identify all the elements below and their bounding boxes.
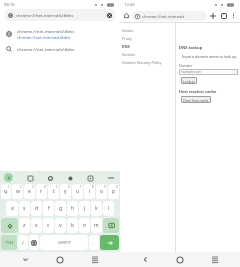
button[interactable]: Home [122,11,131,20]
button[interactable]: More [106,173,116,183]
staticText: QWERTY [58,241,71,245]
button[interactable]: New tab [207,10,218,21]
staticText: 3 [32,185,34,189]
button[interactable]: chrome://net-internals/#dns [4,9,116,21]
button[interactable]: c [43,218,54,233]
button[interactable]: Clear host cache [181,96,211,103]
staticText: m [94,222,99,229]
button[interactable]: Shift [1,218,18,233]
button[interactable]: a [6,201,18,216]
button[interactable]: Expand toolbar [4,173,13,182]
staticText: 9 [104,185,106,189]
button[interactable]: Back [135,252,155,267]
button[interactable]: 9 [96,184,107,199]
staticText: Sockets [122,52,136,57]
button[interactable]: d [31,201,42,216]
staticText: j [84,205,86,212]
staticText: chrome://net-internals/#dns [17,46,75,52]
button[interactable]: n [79,218,90,233]
button[interactable]: chrome://net-internals/#dns [0,42,120,55]
staticText: Input a domain name to look up [182,54,237,59]
staticText: e [28,188,31,195]
staticText: 0 [116,185,118,189]
staticText: . [93,240,95,246]
button[interactable]: Go [100,235,119,250]
staticText: / [22,240,24,246]
button[interactable]: DNS [122,42,175,50]
button[interactable]: QWERTY [40,235,88,250]
button[interactable]: Keyboard tool 4 [86,174,94,182]
button[interactable]: x [31,218,42,233]
staticText: b [71,222,75,229]
staticText: Domain: [179,63,193,68]
button[interactable]: Proxy [122,34,175,42]
button[interactable]: More options [229,11,238,20]
button[interactable]: Tabs [218,10,229,21]
button[interactable]: Hide keyboard [15,252,35,267]
button[interactable]: z [19,218,30,233]
button[interactable]: Lookup [181,77,197,84]
button[interactable]: / [18,235,28,250]
button[interactable]: chrome://net-internals/#dns [0,25,120,42]
button[interactable]: 1 [1,184,11,199]
staticText: 1 [8,185,10,189]
button[interactable]: Domain Security Policy [122,58,175,66]
button[interactable]: h [67,201,78,216]
staticText: f [48,205,50,212]
button[interactable]: g [55,201,66,216]
staticText: u [76,188,80,195]
staticText: example.com [181,70,202,74]
staticText: 2 [20,185,22,189]
staticText: 8 [92,185,94,189]
staticText: o [100,188,104,195]
button[interactable]: 3 [24,184,35,199]
button[interactable]: Events [122,26,175,34]
button[interactable]: Keyboard tool 3 [66,174,74,182]
staticText: chrome://net-internals/#dns [17,28,75,34]
button[interactable]: example.com [179,69,238,75]
staticText: n [83,222,87,229]
button[interactable]: Change language [29,235,39,250]
button[interactable]: Backspace [103,218,119,233]
button[interactable]: Clear [106,12,112,18]
button[interactable]: chrome://net-internals [132,11,207,21]
button[interactable]: 6 [60,184,71,199]
staticText: Clear host cache [183,98,209,102]
staticText: Lookup [183,79,195,83]
button[interactable]: 7 [72,184,83,199]
button[interactable]: l [103,201,114,216]
button[interactable]: m [91,218,102,233]
button[interactable]: Home [50,252,70,267]
button[interactable]: v [55,218,66,233]
staticText: 08:16 [4,2,15,8]
staticText: 4 [44,185,46,189]
button[interactable]: s [19,201,30,216]
button[interactable]: k [91,201,102,216]
button[interactable]: 4 [36,184,47,199]
button[interactable]: Keyboard tool 2 [46,174,54,182]
button[interactable]: b [67,218,78,233]
button[interactable]: Recents [85,252,105,267]
button[interactable]: f [43,201,54,216]
button[interactable]: 5 [48,184,59,199]
button[interactable]: j [79,201,90,216]
staticText: 7 [80,185,82,189]
staticText: chrome://net-internals/#dns [16,12,106,18]
button[interactable]: 8 [84,184,95,199]
button[interactable]: Home [170,252,190,267]
staticText: 6 [68,185,70,189]
staticText: x [35,222,38,229]
button[interactable]: Recents [205,252,225,267]
staticText: k [95,205,98,212]
button[interactable]: 0 [108,184,119,199]
button[interactable]: !1?23 [1,235,17,250]
button[interactable]: 2 [12,184,23,199]
staticText: h [71,205,75,212]
button[interactable]: Keyboard tool 1 [26,174,34,182]
staticText: w [16,188,20,195]
button[interactable]: Sockets [122,50,175,58]
staticText: a [11,205,14,212]
button[interactable]: . [89,235,99,250]
staticText: Proxy [122,36,132,41]
staticText: y [64,188,67,195]
